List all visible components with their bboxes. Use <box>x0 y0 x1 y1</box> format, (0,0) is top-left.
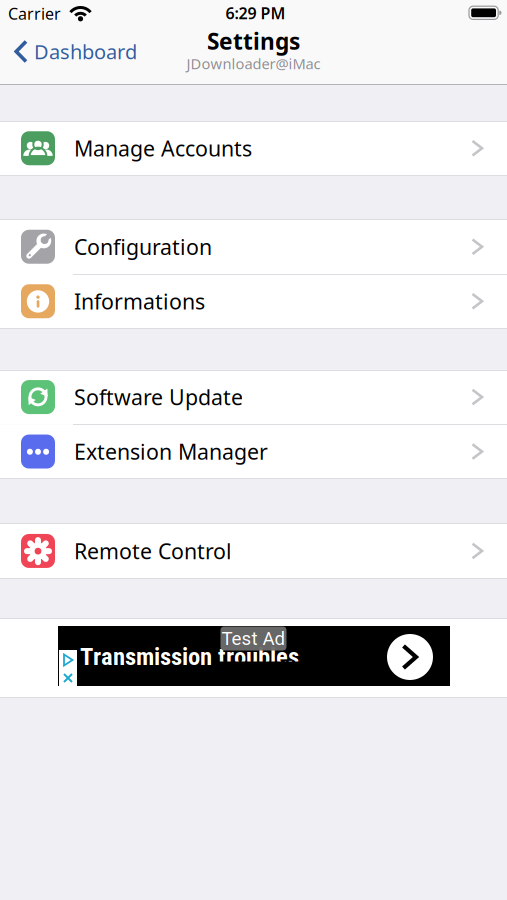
button[interactable]: Manage Accounts <box>0 121 507 175</box>
staticText: Remote Control <box>74 537 232 565</box>
button[interactable]: AdChoices <box>59 650 77 670</box>
staticText: Transmission troubles <box>80 642 299 671</box>
button[interactable]: Informations <box>0 274 507 328</box>
staticText: Dashboard <box>34 38 137 65</box>
staticText: Software Update <box>74 383 243 411</box>
staticText: Configuration <box>74 233 212 261</box>
staticText: Carrier <box>8 3 61 24</box>
staticText: 6:29 PM <box>225 2 285 24</box>
staticText: Manage Accounts <box>74 134 252 162</box>
staticText: Test Ad <box>221 628 285 649</box>
button[interactable]: Software Update <box>0 370 507 424</box>
button[interactable]: Transmission troubles <box>58 626 450 686</box>
staticText: Settings <box>207 26 300 56</box>
button[interactable]: Extension Manager <box>0 424 507 479</box>
button[interactable]: Remote Control <box>0 524 507 578</box>
staticText: JDownloader@iMac <box>186 54 320 73</box>
staticText: Extension Manager <box>74 437 268 466</box>
button[interactable]: Close ad <box>59 670 77 686</box>
staticText: Informations <box>74 287 205 315</box>
button[interactable]: Configuration <box>0 219 507 274</box>
button[interactable]: Dashboard <box>14 38 137 65</box>
